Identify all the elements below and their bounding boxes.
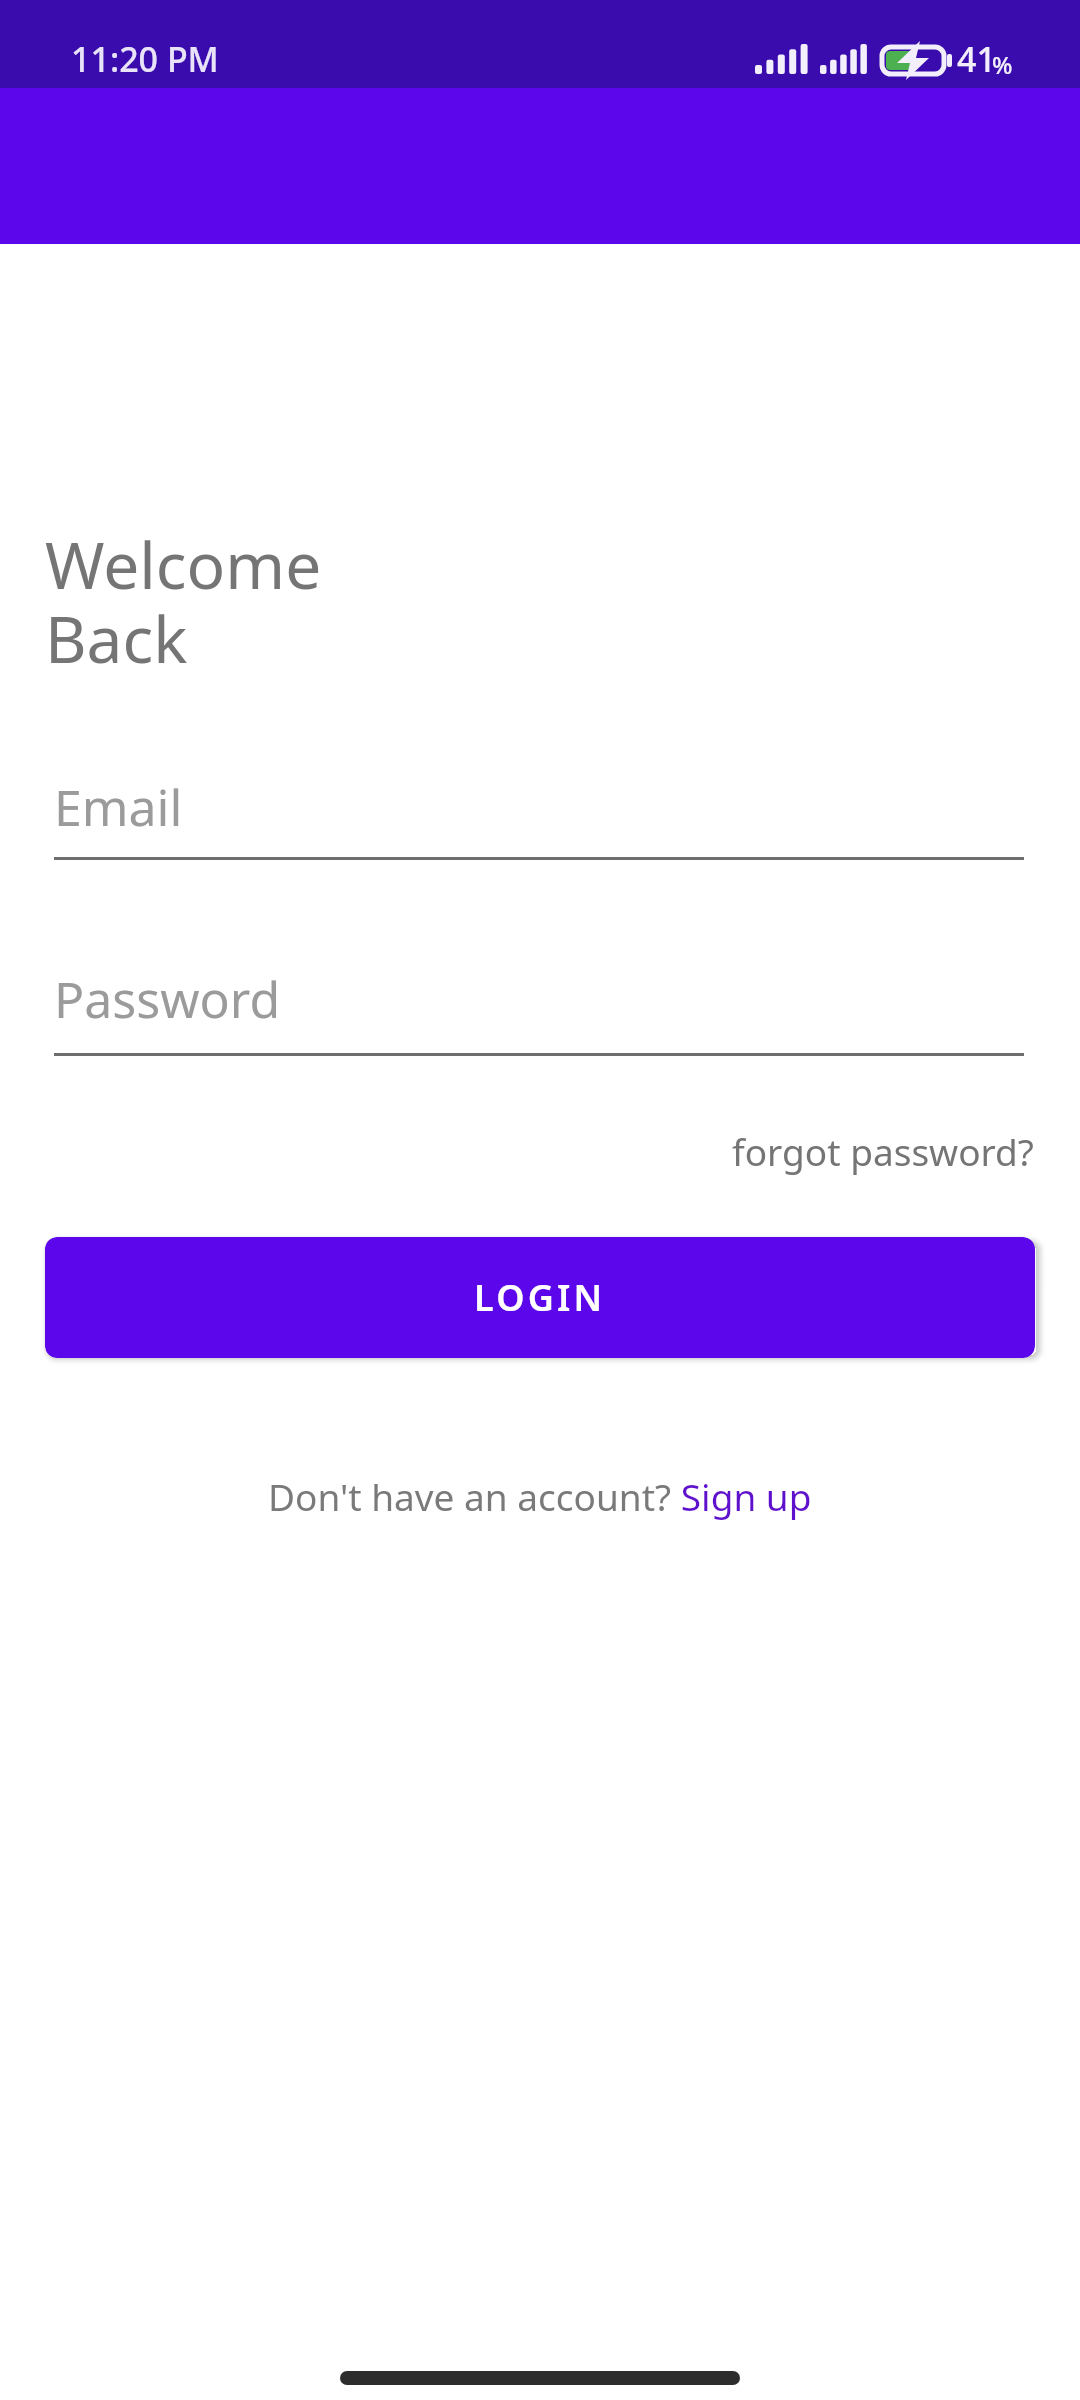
button[interactable]: forgot password? xyxy=(732,1126,1034,1176)
staticText: Welcome Back xyxy=(45,521,322,682)
button[interactable]: Password xyxy=(54,963,1024,1056)
button[interactable]: Don't have an account? Sign up xyxy=(268,1471,812,1521)
staticText: Password xyxy=(54,965,281,1033)
staticText: 11:20 PM xyxy=(71,36,219,82)
staticText: % xyxy=(992,48,1013,81)
staticText: 41 xyxy=(957,36,996,82)
staticText: Email xyxy=(54,773,183,841)
staticText: LOGIN xyxy=(474,1273,606,1322)
button[interactable]: LOGIN xyxy=(45,1237,1035,1358)
button[interactable]: Email xyxy=(54,767,1024,860)
